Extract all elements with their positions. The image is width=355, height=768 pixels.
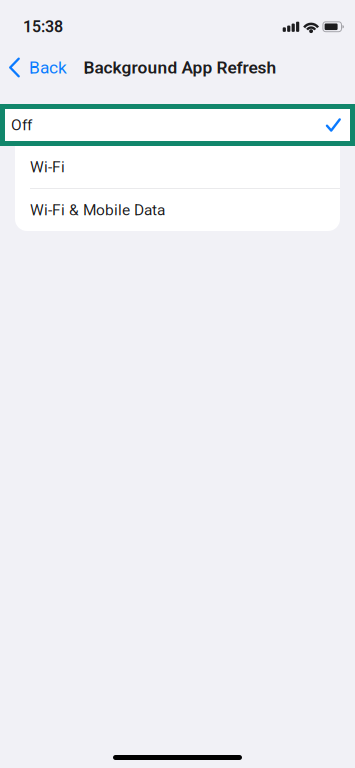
button[interactable]: Off (0, 104, 355, 146)
staticText: Off (11, 116, 32, 134)
button[interactable]: Back (0, 50, 76, 84)
staticText: 15:38 (23, 17, 63, 36)
staticText: Wi-Fi & Mobile Data (30, 201, 165, 219)
staticText: Wi-Fi (30, 158, 65, 176)
button[interactable]: Wi-Fi (15, 146, 340, 188)
staticText: Background App Refresh (83, 57, 276, 78)
button[interactable]: Wi-Fi & Mobile Data (15, 189, 340, 231)
staticText: Back (29, 57, 67, 78)
